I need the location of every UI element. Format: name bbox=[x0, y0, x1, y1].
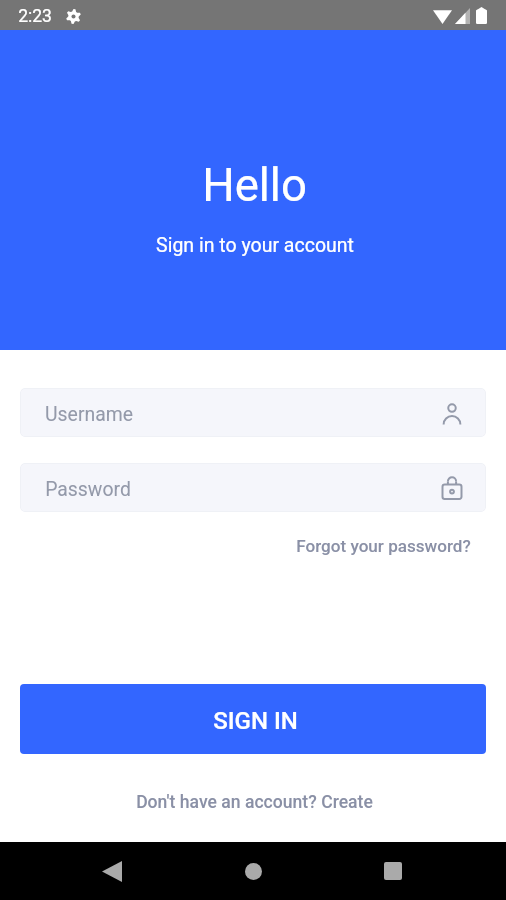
button[interactable]: SIGN IN bbox=[20, 684, 486, 754]
button[interactable]: Recent apps bbox=[373, 851, 413, 891]
staticText: SIGN IN bbox=[213, 707, 298, 735]
staticText: Hello bbox=[202, 159, 307, 212]
button[interactable]: Username bbox=[20, 388, 486, 437]
button[interactable]: Forgot your password? bbox=[281, 531, 486, 561]
button[interactable]: Back bbox=[92, 851, 132, 891]
button[interactable]: Password bbox=[20, 463, 486, 512]
staticText: Password bbox=[45, 478, 131, 501]
button[interactable]: Don't have an account? Create bbox=[121, 786, 386, 819]
staticText: Sign in to your account bbox=[156, 234, 354, 257]
staticText: Forgot your password? bbox=[296, 536, 471, 556]
staticText: Don't have an account? Create bbox=[136, 792, 373, 813]
staticText: Username bbox=[45, 403, 133, 426]
button[interactable]: Home bbox=[233, 851, 273, 891]
staticText: 2:23 bbox=[18, 6, 52, 27]
